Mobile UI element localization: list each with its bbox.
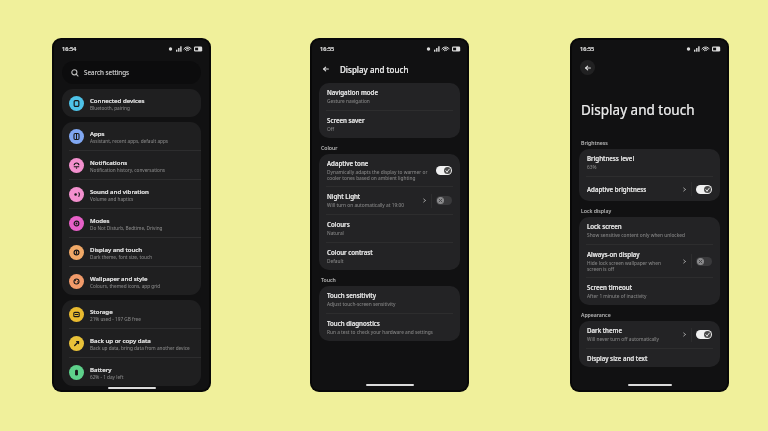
staticText: Gesture navigation xyxy=(327,98,370,105)
staticText: Show sensitive content only when unlocke… xyxy=(587,232,685,239)
staticText: Display size and text xyxy=(587,354,648,362)
staticText: Touch sensitivity xyxy=(327,291,376,299)
staticText: Do Not Disturb, Bedtime, Driving xyxy=(90,225,163,231)
button[interactable]: Colour contrast xyxy=(319,243,460,270)
button[interactable]: Lock screen xyxy=(579,217,720,244)
staticText: Adjust touch-screen sensitivity xyxy=(327,301,396,308)
staticText: Lock screen xyxy=(587,222,622,230)
button[interactable]: Switch on xyxy=(696,330,712,339)
staticText: Appearance xyxy=(581,311,611,318)
staticText: 16:54 xyxy=(62,45,77,53)
button[interactable]: Adaptive brightness xyxy=(579,177,720,201)
staticText: Wallpaper and style xyxy=(90,274,148,282)
staticText: 21% used - 197 GB free xyxy=(90,316,141,322)
staticText: Assistant, recent apps, default apps xyxy=(90,138,169,144)
staticText: Display and touch xyxy=(340,64,409,75)
button[interactable]: Screen saver xyxy=(319,111,460,138)
staticText: Screen saver xyxy=(327,116,365,124)
button[interactable]: Night Light xyxy=(319,187,460,214)
button[interactable]: Touch sensitivity xyxy=(319,286,460,313)
staticText: Notifications xyxy=(90,158,128,166)
staticText: Search settings xyxy=(84,68,130,77)
button[interactable]: Switch off xyxy=(436,196,452,205)
button[interactable]: Notifications xyxy=(62,151,201,179)
button[interactable]: Modes xyxy=(62,209,201,237)
staticText: Apps xyxy=(90,129,105,137)
button[interactable]: Storage xyxy=(62,300,201,328)
staticText: Always-on display xyxy=(587,250,640,258)
staticText: 16:55 xyxy=(580,45,595,53)
staticText: Off xyxy=(327,126,335,133)
staticText: Night Light xyxy=(327,192,361,200)
staticText: Colours, themed icons, app grid xyxy=(90,283,161,289)
staticText: Volume and haptics xyxy=(90,196,134,202)
button[interactable]: Touch diagnostics xyxy=(319,314,460,341)
staticText: Display and touch xyxy=(90,245,143,253)
staticText: 62% - 1 day left xyxy=(90,374,124,380)
button[interactable]: Adaptive tone xyxy=(319,154,460,186)
staticText: Sound and vibration xyxy=(90,187,149,195)
button[interactable]: Back xyxy=(319,62,333,76)
staticText: Dark theme xyxy=(587,326,622,334)
staticText: Display and touch xyxy=(581,101,695,119)
button[interactable]: Apps xyxy=(62,122,201,150)
staticText: Connected devices xyxy=(90,96,145,104)
button[interactable]: Switch off xyxy=(696,257,712,266)
button[interactable]: Wallpaper and style xyxy=(62,267,201,295)
staticText: Touch diagnostics xyxy=(327,319,380,327)
staticText: Notification history, conversations xyxy=(90,167,166,173)
button[interactable]: Navigation mode xyxy=(319,83,460,110)
button[interactable]: Always-on display xyxy=(579,245,720,277)
staticText: Brightness xyxy=(581,139,608,146)
button[interactable]: Switch on xyxy=(436,166,452,175)
button[interactable]: Screen timeout xyxy=(579,278,720,305)
button[interactable]: Colours xyxy=(319,215,460,242)
staticText: Battery xyxy=(90,365,112,373)
staticText: Back up or copy data xyxy=(90,336,151,344)
staticText: Will turn on automatically at 19:00 xyxy=(327,202,404,209)
button[interactable]: Search settings xyxy=(62,61,201,84)
staticText: Storage xyxy=(90,307,113,315)
staticText: Touch xyxy=(321,276,336,283)
staticText: Hide lock screen wallpaper when screen i… xyxy=(587,260,677,272)
button[interactable]: Display size and text xyxy=(579,349,720,367)
staticText: Will never turn off automatically xyxy=(587,336,660,343)
button[interactable]: Back up or copy data xyxy=(62,329,201,357)
button[interactable]: Sound and vibration xyxy=(62,180,201,208)
staticText: Dark theme, font size, touch xyxy=(90,254,153,260)
button[interactable]: Dark theme xyxy=(579,321,720,348)
staticText: Lock display xyxy=(581,207,612,214)
staticText: Natural xyxy=(327,230,344,237)
staticText: 63% xyxy=(587,164,597,171)
staticText: Colours xyxy=(327,220,350,228)
staticText: Dynamically adapts the display to warmer… xyxy=(327,169,432,181)
staticText: 16:55 xyxy=(320,45,335,53)
button[interactable]: Display and touch xyxy=(62,238,201,266)
button[interactable]: Battery xyxy=(62,358,201,386)
staticText: Back up data, bring data from another de… xyxy=(90,345,190,351)
staticText: Colour xyxy=(321,144,338,151)
button[interactable]: Switch on xyxy=(696,185,712,194)
staticText: Adaptive tone xyxy=(327,159,369,167)
staticText: Run a test to check your hardware and se… xyxy=(327,329,433,336)
staticText: After 1 minute of inactivity xyxy=(587,293,647,300)
button[interactable]: Back xyxy=(580,60,595,75)
staticText: Colour contrast xyxy=(327,248,373,256)
staticText: Screen timeout xyxy=(587,283,633,291)
button[interactable]: Connected devices xyxy=(62,89,201,117)
staticText: Adaptive brightness xyxy=(587,185,647,193)
staticText: Navigation mode xyxy=(327,88,378,96)
button[interactable]: Brightness level xyxy=(579,149,720,176)
staticText: Bluetooth, pairing xyxy=(90,105,130,111)
staticText: Brightness level xyxy=(587,154,635,162)
staticText: Modes xyxy=(90,216,110,224)
staticText: Default xyxy=(327,258,344,265)
